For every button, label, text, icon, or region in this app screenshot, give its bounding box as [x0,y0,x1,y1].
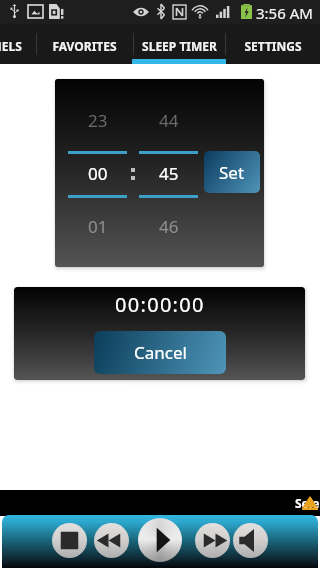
staticText: 23 [88,109,108,132]
button[interactable]: FAVORITES [37,27,132,64]
staticText: SLEEP TIMER [142,38,217,54]
button[interactable]: SETTINGS [226,27,320,64]
staticText: CHANNELS [0,38,22,54]
staticText: FAVORITES [52,38,117,54]
button[interactable]: Fast forward [195,523,230,558]
button[interactable]: Volume [233,523,268,558]
button[interactable]: Play [138,518,182,562]
staticText: 01 [88,215,108,238]
staticText: 00 [88,162,108,185]
staticText: 3:56 AM [256,3,313,23]
button[interactable]: CHANNELS [0,27,37,64]
button[interactable]: Cancel [94,331,226,374]
button[interactable]: Stop [52,523,87,558]
staticText: 45 [159,162,179,185]
staticText: Sele [295,495,320,511]
button[interactable]: Set [204,151,260,193]
staticText: 46 [159,215,179,238]
button[interactable]: Rewind [94,523,129,558]
staticText: SETTINGS [244,38,302,54]
staticText: Set [219,161,245,184]
button[interactable]: SLEEP TIMER [132,27,226,64]
staticText: Cancel [134,341,187,364]
staticText: 44 [159,109,179,132]
staticText: 00:00:00 [115,291,205,315]
